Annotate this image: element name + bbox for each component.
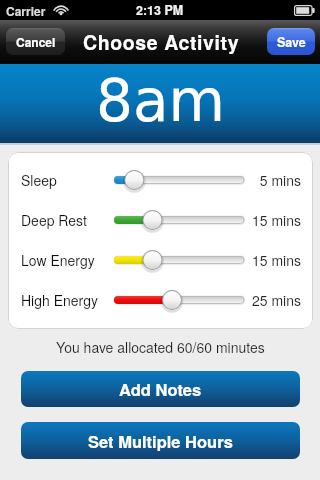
other: Battery full xyxy=(294,5,315,16)
staticText: Save xyxy=(277,33,306,51)
button[interactable]: Save xyxy=(267,28,315,55)
button[interactable]: Deep Rest xyxy=(8,200,313,240)
button[interactable]: Set Multiple Hours xyxy=(21,422,300,459)
button[interactable]: Cancel xyxy=(6,28,65,55)
staticText: Choose Activity xyxy=(83,28,240,56)
button[interactable]: High Energy xyxy=(8,280,313,320)
staticText: Sleep xyxy=(21,170,57,190)
other: Wi-Fi signal xyxy=(53,4,69,16)
staticText: 5 mins xyxy=(259,170,301,190)
staticText: 15 mins xyxy=(251,210,301,230)
button[interactable]: Sleep xyxy=(8,160,313,200)
button[interactable]: Add Notes xyxy=(21,371,300,407)
staticText: 2:13 PM xyxy=(136,1,184,19)
staticText: Cancel xyxy=(16,33,56,50)
staticText: 8am xyxy=(96,67,225,135)
staticText: Add Notes xyxy=(119,377,202,401)
staticText: You have allocated 60/60 minutes xyxy=(56,337,265,357)
staticText: Low Energy xyxy=(21,250,95,270)
staticText: 15 mins xyxy=(251,250,301,270)
staticText: Deep Rest xyxy=(21,210,87,230)
staticText: Carrier xyxy=(6,2,46,19)
staticText: 25 mins xyxy=(251,290,301,310)
staticText: High Energy xyxy=(21,290,98,310)
button[interactable]: Low Energy xyxy=(8,240,313,280)
staticText: Set Multiple Hours xyxy=(88,429,233,453)
